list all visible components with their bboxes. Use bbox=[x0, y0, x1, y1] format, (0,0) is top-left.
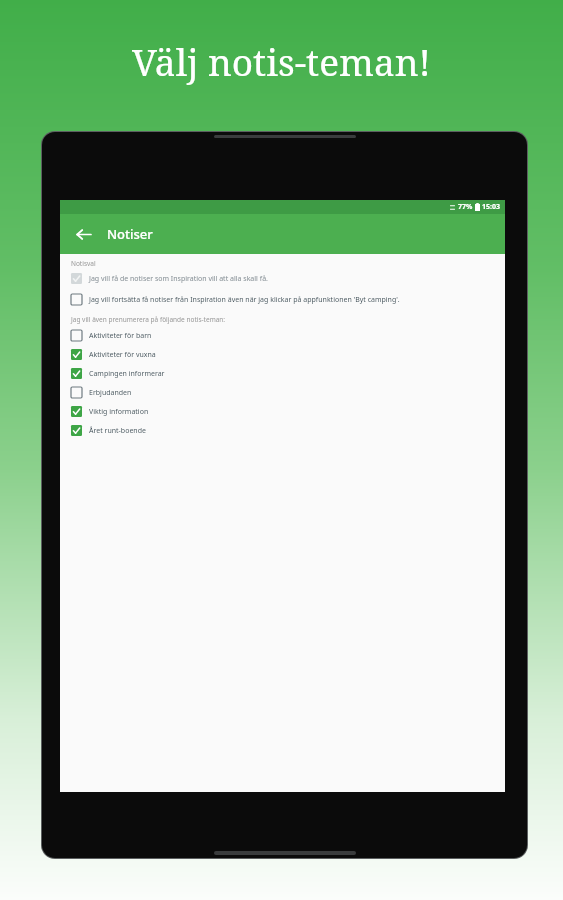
button[interactable]: Jag vill få de notiser som Inspiration v… bbox=[67, 271, 498, 286]
staticText: Aktiviteter för vuxna bbox=[89, 350, 156, 360]
button[interactable]: Viktig information bbox=[67, 404, 498, 419]
staticText: Viktig information bbox=[89, 407, 149, 417]
button[interactable]: Campingen informerar bbox=[67, 366, 498, 381]
staticText: Jag vill få de notiser som Inspiration v… bbox=[89, 274, 268, 284]
staticText: Året runt-boende bbox=[89, 426, 146, 436]
button[interactable]: Aktiviteter för vuxna bbox=[67, 347, 498, 362]
staticText: Välj notis-teman! bbox=[0, 36, 563, 86]
staticText: Erbjudanden bbox=[89, 388, 132, 398]
staticText: Aktiviteter för barn bbox=[89, 331, 152, 341]
button[interactable]: Aktiviteter för barn bbox=[67, 328, 498, 343]
staticText: Jag vill även prenumerera på följande no… bbox=[71, 315, 226, 324]
staticText: 15:03 bbox=[482, 202, 500, 212]
button[interactable]: Jag vill fortsätta få notiser från Inspi… bbox=[67, 292, 498, 307]
staticText: Notiser bbox=[107, 225, 153, 243]
button[interactable]: Erbjudanden bbox=[67, 385, 498, 400]
staticText: Campingen informerar bbox=[89, 369, 165, 379]
button[interactable]: Back bbox=[71, 222, 95, 246]
button[interactable]: Året runt-boende bbox=[67, 423, 498, 438]
staticText: 77% bbox=[458, 202, 473, 212]
staticText: Jag vill fortsätta få notiser från Inspi… bbox=[89, 295, 400, 305]
staticText: Notisval bbox=[71, 259, 96, 268]
